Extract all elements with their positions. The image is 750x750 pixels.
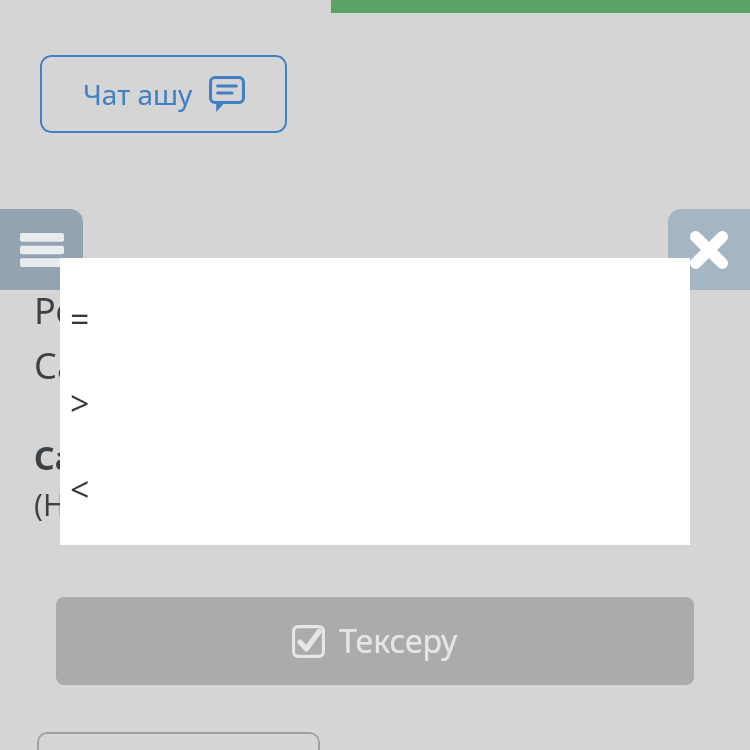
staticText: Ре (34, 286, 76, 335)
button[interactable] (37, 732, 320, 750)
button[interactable]: > (70, 380, 90, 426)
staticText: Са (34, 341, 78, 390)
button[interactable]: Menu (0, 209, 83, 290)
staticText: (Н (34, 484, 66, 525)
button[interactable]: Close (668, 209, 750, 290)
button[interactable]: Тексеру (56, 597, 694, 685)
button[interactable]: Чат ашу (40, 55, 287, 133)
button[interactable]: = (70, 296, 90, 342)
staticText: Тексеру (339, 619, 458, 663)
staticText: Чат ашу (83, 75, 193, 113)
button[interactable]: < (70, 466, 90, 512)
staticText: Са (34, 436, 74, 480)
